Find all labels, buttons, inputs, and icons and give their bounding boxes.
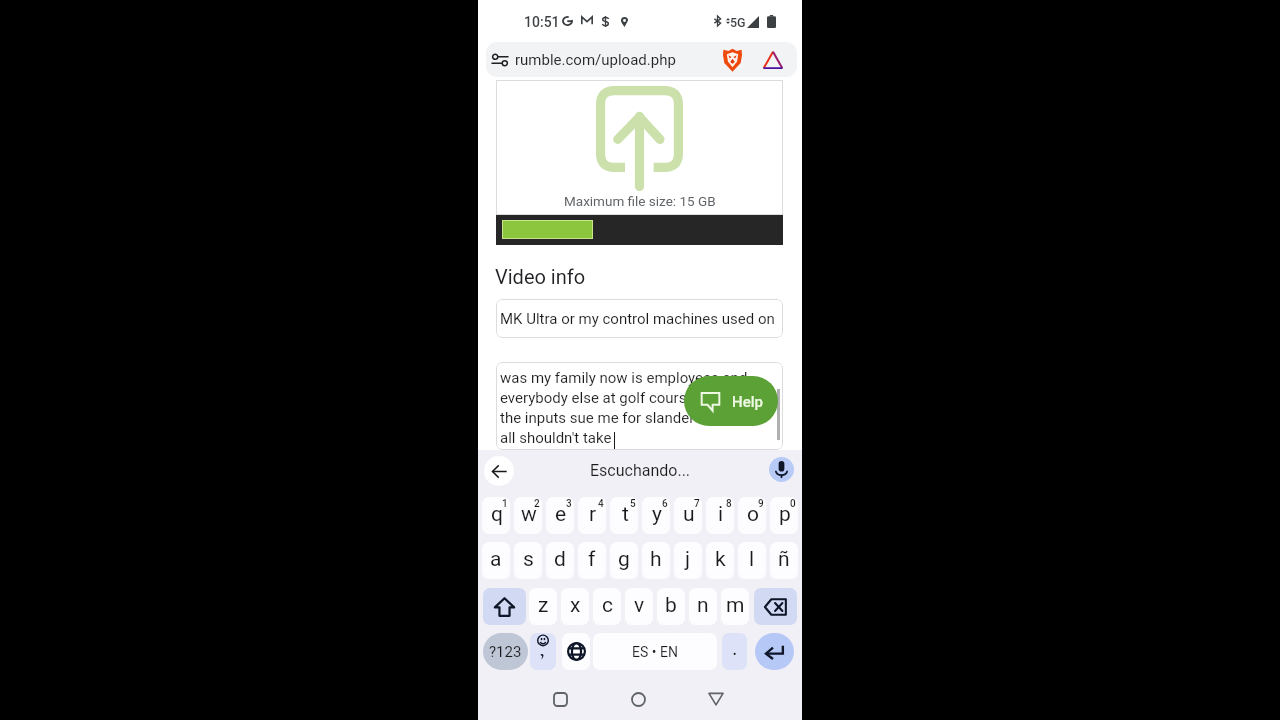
staticText: rumble.com/upload.php bbox=[515, 51, 676, 69]
button[interactable]: s bbox=[514, 542, 542, 579]
staticText: q bbox=[491, 502, 503, 527]
button[interactable]: z bbox=[529, 588, 557, 625]
other: Site settings bbox=[492, 52, 508, 68]
staticText: a bbox=[490, 547, 502, 572]
button[interactable]: Voice input bbox=[769, 457, 794, 482]
button[interactable]: Shift bbox=[483, 588, 526, 625]
button[interactable]: j bbox=[674, 542, 702, 579]
button[interactable]: o bbox=[738, 497, 766, 534]
button[interactable]: Enter bbox=[755, 633, 794, 670]
button[interactable]: p bbox=[770, 497, 798, 534]
staticText: h bbox=[650, 547, 662, 572]
staticText: . bbox=[732, 636, 738, 661]
button[interactable]: i bbox=[706, 497, 734, 534]
staticText: Video info bbox=[495, 265, 586, 288]
button[interactable]: d bbox=[546, 542, 574, 579]
button[interactable]: Site settings bbox=[486, 42, 797, 77]
button[interactable]: t bbox=[610, 497, 638, 534]
button[interactable]: e bbox=[546, 497, 574, 534]
button[interactable]: l bbox=[738, 542, 766, 579]
button[interactable]: Back bbox=[700, 683, 732, 715]
button[interactable]: u bbox=[674, 497, 702, 534]
staticText: Maximum file size: 15 GB bbox=[564, 193, 716, 209]
staticText: 0 bbox=[790, 498, 796, 510]
staticText: f bbox=[588, 547, 596, 572]
staticText: ES • EN bbox=[632, 644, 678, 660]
button[interactable]: . bbox=[722, 633, 747, 670]
staticText: 4 bbox=[598, 498, 604, 510]
staticText: t bbox=[622, 502, 629, 527]
other: BAT rewards bbox=[763, 51, 783, 69]
staticText: o bbox=[747, 502, 759, 527]
button[interactable]: n bbox=[689, 588, 717, 625]
button[interactable]: c bbox=[593, 588, 621, 625]
staticText: n bbox=[697, 593, 709, 618]
staticText: m bbox=[726, 593, 745, 618]
staticText: z bbox=[538, 593, 549, 618]
button[interactable]: ES • EN bbox=[593, 633, 717, 670]
button[interactable]: x bbox=[561, 588, 589, 625]
button[interactable]: r bbox=[578, 497, 606, 534]
staticText: b bbox=[665, 593, 677, 618]
staticText: 6 bbox=[662, 498, 668, 510]
button[interactable]: q bbox=[482, 497, 510, 534]
staticText: j bbox=[685, 547, 691, 572]
staticText: was my family now is employees and every… bbox=[500, 369, 752, 447]
staticText: 2 bbox=[534, 498, 540, 510]
button[interactable]: f bbox=[578, 542, 606, 579]
staticText: 8 bbox=[726, 498, 732, 510]
button[interactable]: MK Ultra or my control machines used on bbox=[496, 299, 783, 338]
staticText: c bbox=[602, 593, 613, 618]
staticText: 3 bbox=[566, 498, 572, 510]
staticText: 5 bbox=[630, 498, 636, 510]
button[interactable]: v bbox=[625, 588, 653, 625]
button[interactable]: Backspace bbox=[754, 588, 797, 625]
staticText: g bbox=[618, 547, 630, 572]
staticText: p bbox=[779, 502, 791, 527]
staticText: x bbox=[570, 593, 581, 618]
staticText: 10:51 bbox=[524, 14, 560, 30]
button[interactable]: was my family now is employees and every… bbox=[496, 362, 783, 450]
staticText: Escuchando... bbox=[590, 461, 691, 480]
staticText: MK Ultra or my control machines used on bbox=[500, 310, 775, 328]
staticText: 1 bbox=[502, 498, 508, 510]
staticText: 9 bbox=[758, 498, 764, 510]
staticText: e bbox=[555, 502, 567, 527]
button[interactable]: Recent apps bbox=[544, 683, 576, 715]
staticText: k bbox=[715, 547, 726, 572]
staticText: d bbox=[554, 547, 566, 572]
staticText: l bbox=[749, 547, 755, 572]
other: Brave shields bbox=[723, 48, 742, 72]
button[interactable]: w bbox=[514, 497, 542, 534]
button[interactable]: y bbox=[642, 497, 670, 534]
staticText: s bbox=[523, 547, 534, 572]
staticText: y bbox=[652, 502, 662, 527]
button[interactable]: m bbox=[721, 588, 749, 625]
staticText: w bbox=[521, 502, 537, 527]
button[interactable]: Back bbox=[484, 456, 514, 486]
button[interactable]: k bbox=[706, 542, 734, 579]
staticText: r bbox=[589, 502, 597, 527]
button[interactable]: b bbox=[657, 588, 685, 625]
staticText: ?123 bbox=[489, 643, 522, 661]
staticText: ñ bbox=[778, 547, 790, 572]
button[interactable]: ñ bbox=[770, 542, 798, 579]
button[interactable]: g bbox=[610, 542, 638, 579]
button[interactable]: a bbox=[482, 542, 510, 579]
staticText: u bbox=[683, 502, 695, 527]
button[interactable]: Home bbox=[622, 683, 654, 715]
other: Help chat bbox=[700, 391, 721, 412]
button[interactable]: Help chat bbox=[684, 376, 778, 426]
button[interactable]: Change language bbox=[562, 633, 590, 670]
staticText: v bbox=[634, 593, 645, 618]
button[interactable]: Emoji bbox=[530, 633, 556, 670]
button[interactable]: ?123 bbox=[483, 633, 528, 670]
button[interactable]: h bbox=[642, 542, 670, 579]
staticText: i bbox=[718, 502, 724, 527]
staticText: 7 bbox=[694, 498, 700, 510]
button[interactable]: Maximum file size: 15 GB bbox=[496, 80, 783, 215]
staticText: Help bbox=[732, 393, 763, 411]
staticText: 5G bbox=[730, 15, 746, 30]
